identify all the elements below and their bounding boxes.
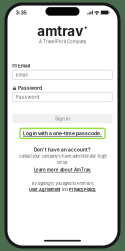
staticText: Learn more about AmTrav. [34, 167, 91, 172]
staticText: By signing in, you agree to AmTrav's [31, 181, 93, 186]
staticText: set up. [57, 160, 68, 165]
button[interactable]: Password [12, 92, 112, 102]
staticText: A TravelPerk Company [39, 39, 86, 44]
button[interactable]: Log in with a one-time passcode. [20, 128, 105, 138]
button[interactable]: Learn more about AmTrav. [34, 167, 91, 172]
button[interactable]: Email [12, 70, 112, 80]
staticText: Privacy Policy. [69, 187, 96, 192]
staticText: and [61, 187, 67, 192]
staticText: Email [18, 63, 30, 69]
staticText: User Agreement [29, 187, 60, 192]
staticText: 3:35 [15, 9, 26, 16]
staticText: Email [15, 72, 27, 78]
staticText: + [84, 24, 88, 31]
staticText: Password [15, 94, 39, 100]
staticText: Log in with a one-time passcode. [23, 130, 102, 136]
staticText: Don't have an account? [34, 147, 91, 152]
button[interactable]: User Agreement [29, 187, 60, 192]
staticText: Password [18, 85, 42, 91]
button[interactable]: Sign in [12, 114, 112, 123]
staticText: Contact your company's travel administra… [18, 154, 106, 159]
staticText: Sign in [55, 115, 70, 122]
button[interactable]: Privacy Policy. [69, 187, 96, 192]
staticText: amtrav [37, 23, 83, 39]
